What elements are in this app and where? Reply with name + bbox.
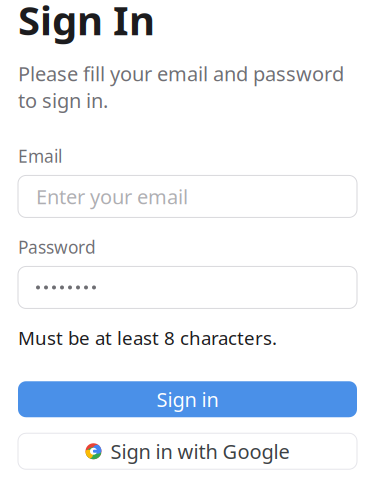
staticText: Email	[18, 144, 62, 167]
button[interactable]: Sign in with Google	[18, 433, 357, 469]
staticText: Must be at least 8 characters.	[18, 325, 277, 350]
button[interactable]: Sign in	[18, 381, 357, 417]
staticText: Sign in with Google	[110, 438, 289, 465]
staticText: Password	[18, 235, 96, 258]
staticText: Please fill your email and password to s…	[18, 60, 344, 113]
staticText: Enter your email	[36, 183, 188, 210]
staticText: Sign in	[156, 386, 218, 413]
staticText: Sign In	[18, 0, 155, 46]
